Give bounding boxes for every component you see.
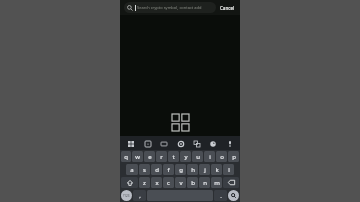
button[interactable]: Voice input: [224, 138, 235, 149]
staticText: u: [196, 153, 200, 161]
staticText: i: [209, 153, 211, 161]
staticText: a: [130, 166, 134, 174]
button[interactable]: Search crypto symbol, contact add: [124, 2, 216, 13]
staticText: g: [179, 166, 183, 174]
staticText: o: [220, 153, 224, 161]
button[interactable]: v: [175, 177, 186, 188]
staticText: s: [143, 166, 146, 174]
button[interactable]: h: [187, 164, 198, 175]
staticText: ,: [139, 192, 141, 200]
button[interactable]: GIF: [158, 138, 169, 149]
staticText: k: [215, 166, 219, 174]
staticText: d: [155, 166, 159, 174]
button[interactable]: r: [156, 151, 167, 162]
staticText: h: [191, 166, 195, 174]
button[interactable]: Symbols: [121, 190, 132, 201]
button[interactable]: Backspace: [223, 177, 239, 188]
button[interactable]: ,: [133, 190, 146, 201]
staticText: Cancel: [220, 5, 235, 11]
staticText: z: [143, 179, 146, 187]
button[interactable]: z: [139, 177, 150, 188]
button[interactable]: Shift: [121, 177, 138, 188]
button[interactable]: Apps: [125, 138, 136, 149]
button[interactable]: t: [168, 151, 179, 162]
staticText: f: [167, 166, 170, 174]
button[interactable]: f: [163, 164, 174, 175]
button[interactable]: l: [223, 164, 234, 175]
button[interactable]: k: [211, 164, 222, 175]
button[interactable]: a: [126, 164, 138, 175]
button[interactable]: x: [151, 177, 162, 188]
staticText: c: [167, 179, 170, 187]
staticText: y: [184, 153, 188, 161]
staticText: e: [148, 153, 152, 161]
button[interactable]: e: [144, 151, 155, 162]
staticText: p: [232, 153, 236, 161]
staticText: v: [179, 179, 183, 187]
button[interactable]: u: [192, 151, 203, 162]
staticText: Search crypto symbol, contact add: [137, 5, 202, 10]
button[interactable]: c: [163, 177, 174, 188]
button[interactable]: s: [139, 164, 150, 175]
button[interactable]: b: [187, 177, 198, 188]
staticText: w: [135, 153, 140, 161]
button[interactable]: y: [180, 151, 191, 162]
button[interactable]: q: [121, 151, 131, 162]
button[interactable]: j: [199, 164, 210, 175]
staticText: ?123: [123, 194, 130, 198]
button[interactable]: Settings: [175, 138, 186, 149]
button[interactable]: Cancel: [219, 3, 236, 13]
staticText: n: [203, 179, 207, 187]
staticText: q: [124, 153, 128, 161]
staticText: t: [172, 153, 175, 161]
button[interactable]: Translate: [191, 138, 202, 149]
button[interactable]: .: [214, 190, 227, 201]
button[interactable]: Stickers: [142, 138, 153, 149]
button[interactable]: p: [228, 151, 239, 162]
button[interactable]: g: [175, 164, 186, 175]
staticText: m: [214, 179, 220, 187]
staticText: b: [191, 179, 195, 187]
staticText: l: [228, 166, 230, 174]
button[interactable]: i: [204, 151, 215, 162]
staticText: .: [220, 192, 222, 200]
button[interactable]: n: [199, 177, 210, 188]
button[interactable]: w: [132, 151, 143, 162]
button[interactable]: Search: [228, 190, 239, 201]
button[interactable]: Theme: [207, 138, 218, 149]
staticText: j: [204, 166, 206, 174]
button[interactable]: o: [216, 151, 227, 162]
staticText: x: [155, 179, 159, 187]
button[interactable]: d: [151, 164, 162, 175]
staticText: r: [160, 153, 163, 161]
button[interactable]: m: [211, 177, 222, 188]
